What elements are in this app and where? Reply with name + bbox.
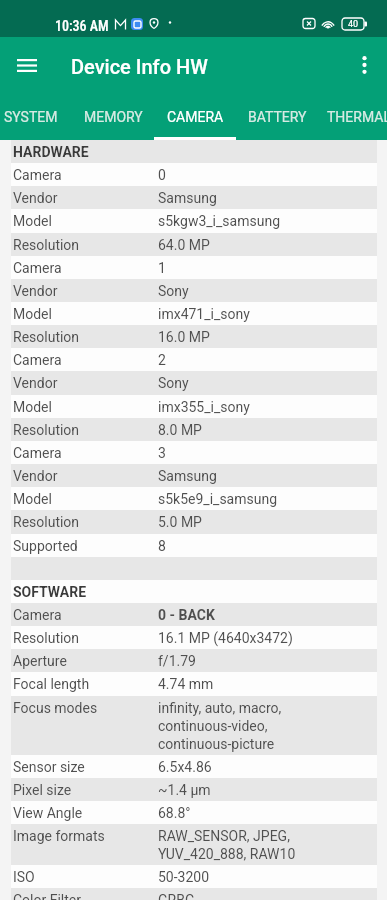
button[interactable]: Pixel size — [11, 778, 377, 801]
staticText: 0 - BACK — [158, 607, 215, 623]
button[interactable]: Camera — [11, 256, 377, 279]
staticText: Model — [13, 491, 52, 507]
button[interactable]: Sensor size — [11, 755, 377, 778]
staticText: Image formats — [13, 828, 105, 844]
button[interactable]: Vendor — [11, 279, 377, 302]
staticText: 16.1 MP (4640x3472) — [158, 630, 293, 646]
staticText: infinity, auto, macro, continuous-video,… — [158, 700, 282, 753]
button[interactable]: SOFTWARE — [11, 580, 377, 603]
button[interactable]: Vendor — [11, 464, 377, 487]
button[interactable]: CAMERA — [154, 99, 236, 140]
staticText: 2 — [158, 352, 166, 368]
staticText: Focal length — [13, 676, 90, 692]
button[interactable]: HARDWARE — [11, 140, 377, 163]
staticText: imx471_i_sony — [158, 306, 250, 322]
staticText: SOFTWARE — [13, 584, 87, 600]
staticText: Device Info HW — [71, 55, 208, 78]
staticText: RAW_SENSOR, JPEG, YUV_420_888, RAW10 — [158, 828, 296, 863]
button[interactable]: Menu — [9, 47, 45, 83]
staticText: 68.8° — [158, 805, 191, 821]
button[interactable]: SYSTEM — [0, 99, 72, 140]
button[interactable]: Camera — [11, 163, 377, 186]
staticText: Camera — [13, 607, 62, 623]
staticText: Model — [13, 213, 52, 229]
button[interactable]: Vendor — [11, 371, 377, 395]
staticText: 8 — [158, 538, 166, 554]
staticText: SYSTEM — [4, 109, 58, 125]
button[interactable]: Model — [11, 302, 377, 325]
staticText: BATTERY — [248, 109, 307, 125]
staticText: Focus modes — [13, 700, 98, 716]
staticText: Supported — [13, 538, 78, 554]
staticText: 50-3200 — [158, 869, 210, 885]
staticText: Sensor size — [13, 759, 85, 775]
staticText: 64.0 MP — [158, 237, 210, 253]
button[interactable]: Model — [11, 209, 377, 233]
button[interactable]: Model — [11, 395, 377, 418]
staticText: Resolution — [13, 630, 80, 646]
staticText: Resolution — [13, 422, 80, 438]
staticText: MEMORY — [84, 109, 143, 125]
staticText: 8.0 MP — [158, 422, 202, 438]
staticText: 6.5x4.86 — [158, 759, 212, 775]
button[interactable]: BATTERY — [236, 99, 318, 140]
staticText: Vendor — [13, 468, 58, 484]
staticText: CAMERA — [167, 109, 224, 125]
staticText: 4.74 mm — [158, 676, 214, 692]
staticText: Pixel size — [13, 782, 72, 798]
staticText: Camera — [13, 445, 62, 461]
staticText: Resolution — [13, 329, 80, 345]
staticText: Camera — [13, 352, 62, 368]
button[interactable]: Resolution — [11, 418, 377, 441]
staticText: 1 — [158, 260, 166, 276]
staticText: imx355_i_sony — [158, 399, 250, 415]
button[interactable]: Color Filter — [11, 888, 377, 900]
button[interactable]: Supported — [11, 534, 377, 557]
staticText: ~1.4 µm — [158, 782, 211, 798]
staticText: ISO — [13, 869, 35, 885]
staticText: HARDWARE — [13, 144, 89, 160]
button[interactable]: More options — [346, 47, 382, 83]
staticText: Color Filter — [13, 892, 81, 900]
staticText: Vendor — [13, 283, 58, 299]
button[interactable]: THERMAL — [318, 99, 387, 140]
button[interactable]: MEMORY — [72, 99, 154, 140]
button[interactable]: ISO — [11, 865, 377, 888]
staticText: 40 — [348, 19, 359, 30]
staticText: Samsung — [158, 190, 217, 206]
button[interactable]: Resolution — [11, 325, 377, 348]
button[interactable]: Image formats — [11, 824, 377, 865]
staticText: Vendor — [13, 190, 58, 206]
button[interactable]: Focus modes — [11, 696, 377, 755]
staticText: Model — [13, 399, 52, 415]
staticText: 16.0 MP — [158, 329, 210, 345]
staticText: 3 — [158, 445, 166, 461]
staticText: Vendor — [13, 375, 58, 391]
button[interactable]: Focal length — [11, 672, 377, 696]
staticText: Model — [13, 306, 52, 322]
button[interactable]: Resolution — [11, 626, 377, 649]
staticText: Camera — [13, 167, 62, 183]
staticText: s5kgw3_i_samsung — [158, 213, 280, 229]
button[interactable]: Camera — [11, 441, 377, 464]
staticText: Sony — [158, 375, 189, 391]
staticText: f/1.79 — [158, 653, 196, 669]
button[interactable]: Camera — [11, 603, 377, 626]
button[interactable]: Resolution — [11, 233, 377, 256]
staticText: 5.0 MP — [158, 514, 202, 530]
staticText: 10:36 AM — [55, 18, 109, 34]
staticText: Resolution — [13, 514, 80, 530]
button[interactable]: Aperture — [11, 649, 377, 672]
button[interactable]: Vendor — [11, 186, 377, 209]
button[interactable]: Camera — [11, 348, 377, 371]
staticText: THERMAL — [327, 109, 387, 125]
staticText: Samsung — [158, 468, 217, 484]
staticText: Aperture — [13, 653, 67, 669]
button[interactable]: Resolution — [11, 510, 377, 534]
button[interactable]: Model — [11, 487, 377, 510]
staticText: Camera — [13, 260, 62, 276]
staticText: GRBG — [158, 892, 195, 900]
button[interactable]: View Angle — [11, 801, 377, 824]
staticText: 0 — [158, 167, 166, 183]
